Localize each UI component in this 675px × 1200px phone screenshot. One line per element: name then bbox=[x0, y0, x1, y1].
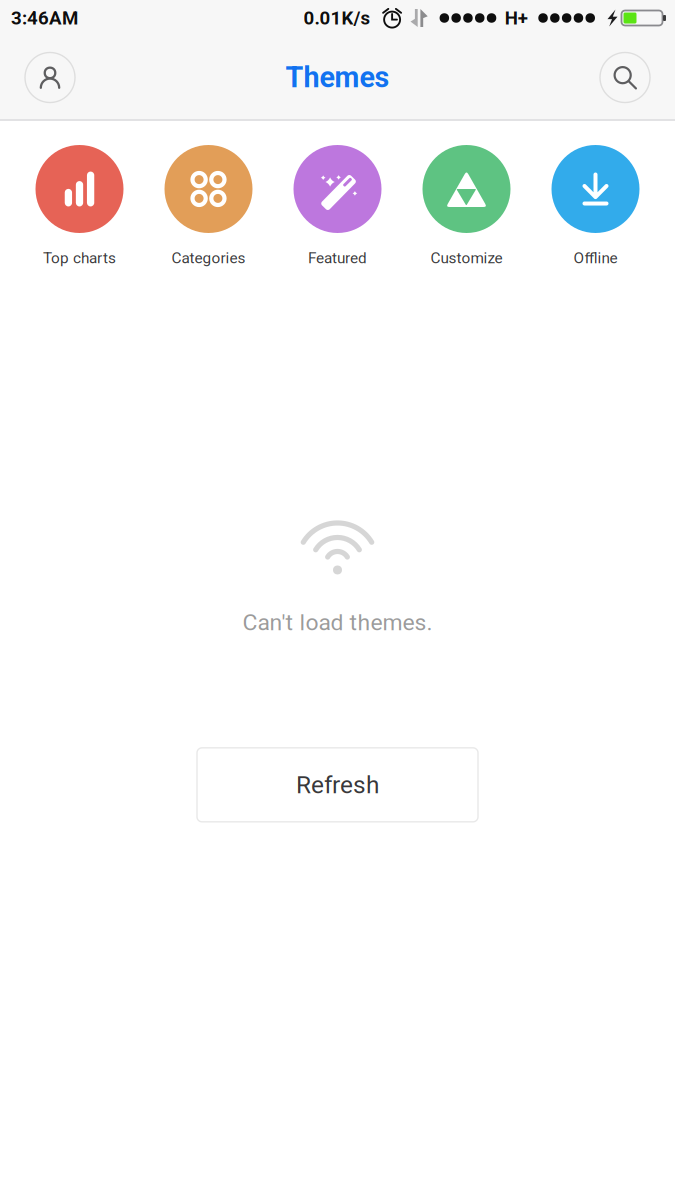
staticText: Can't load themes. bbox=[242, 609, 432, 636]
button[interactable]: Refresh bbox=[197, 748, 478, 822]
staticText: Customize bbox=[430, 249, 502, 267]
staticText: Top charts bbox=[43, 249, 116, 267]
button[interactable]: Categories bbox=[144, 145, 273, 267]
staticText: Refresh bbox=[296, 770, 379, 799]
staticText: Offline bbox=[573, 249, 617, 267]
button[interactable]: Account bbox=[25, 52, 75, 102]
button[interactable]: Top charts bbox=[15, 145, 144, 267]
button[interactable]: Search bbox=[600, 52, 650, 102]
button[interactable]: Featured bbox=[273, 145, 402, 267]
staticText: 0.01K/s bbox=[304, 7, 371, 29]
staticText: Themes bbox=[285, 61, 389, 94]
staticText: Featured bbox=[308, 249, 367, 267]
staticText: Categories bbox=[171, 249, 245, 267]
button[interactable]: Offline bbox=[531, 145, 660, 267]
staticText: 3:46AM bbox=[11, 7, 78, 29]
staticText: H+ bbox=[505, 7, 528, 29]
button[interactable]: Customize bbox=[402, 145, 531, 267]
